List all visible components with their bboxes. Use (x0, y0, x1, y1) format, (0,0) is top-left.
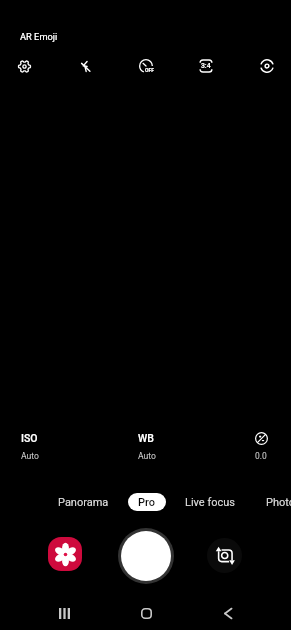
button[interactable]: Switch camera (207, 538, 242, 573)
staticText: OFF (145, 67, 154, 73)
button[interactable]: Timer off (135, 55, 157, 77)
button[interactable]: Gallery (48, 537, 82, 571)
button[interactable]: Home (133, 600, 160, 627)
button[interactable]: Exposure value (248, 432, 274, 461)
button[interactable]: Panorama (58, 496, 109, 509)
button[interactable]: Pro (128, 493, 166, 511)
staticText: 3:4 (201, 62, 211, 70)
staticText: Pro (138, 496, 156, 509)
button[interactable]: Settings (13, 55, 35, 77)
staticText: Auto (21, 451, 39, 461)
button[interactable]: Back (214, 600, 241, 627)
button[interactable]: Aspect ratio 3:4 (195, 55, 217, 77)
button[interactable]: Take photo (118, 528, 174, 584)
button[interactable]: Motion photo (256, 55, 278, 77)
button[interactable]: ISO (21, 432, 39, 461)
staticText: AR Emoji (20, 31, 58, 42)
staticText: 0.0 (255, 451, 267, 461)
button[interactable]: Photo (266, 496, 291, 509)
staticText: Auto (138, 451, 156, 461)
staticText: ISO (21, 432, 38, 444)
button[interactable]: Recents (51, 600, 78, 627)
button[interactable]: WB (138, 432, 156, 461)
button[interactable]: Flash off (74, 55, 96, 77)
button[interactable]: Live focus (185, 496, 236, 509)
staticText: WB (138, 432, 154, 444)
